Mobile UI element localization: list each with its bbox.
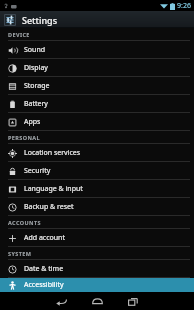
button[interactable]: Display (0, 59, 194, 77)
button[interactable]: Settings (0, 11, 194, 28)
staticText: ACCOUNTS (8, 219, 41, 226)
staticText: 9:26 (177, 1, 191, 11)
staticText: Settings (22, 14, 58, 26)
button[interactable]: Backup & reset (0, 198, 194, 216)
button[interactable]: Location services (0, 144, 194, 162)
button[interactable]: Storage (0, 77, 194, 95)
button[interactable]: Security (0, 162, 194, 180)
button[interactable]: Sound (0, 41, 194, 59)
staticText: Date & time (24, 264, 64, 274)
button[interactable]: Back (43, 292, 79, 310)
button[interactable]: Add account (0, 229, 194, 247)
staticText: Display (24, 63, 48, 73)
staticText: Sound (24, 45, 46, 55)
button[interactable]: Language & input (0, 180, 194, 198)
button[interactable]: Accessibility (0, 278, 194, 292)
staticText: Location services (24, 148, 81, 158)
staticText: DEVICE (8, 31, 30, 38)
staticText: Backup & reset (24, 202, 74, 212)
staticText: Storage (24, 81, 50, 91)
staticText: PERSONAL (8, 134, 41, 141)
staticText: SYSTEM (8, 250, 32, 257)
staticText: Language & input (24, 184, 83, 194)
button[interactable]: Home (79, 292, 115, 310)
button[interactable]: Recent apps (115, 292, 151, 310)
staticText: Battery (24, 99, 48, 109)
staticText: Security (24, 166, 51, 176)
button[interactable]: Date & time (0, 260, 194, 278)
staticText: Add account (24, 233, 65, 243)
button[interactable]: Battery (0, 95, 194, 113)
staticText: Accessibility (24, 280, 64, 290)
staticText: Apps (24, 117, 41, 127)
button[interactable]: Apps (0, 113, 194, 131)
